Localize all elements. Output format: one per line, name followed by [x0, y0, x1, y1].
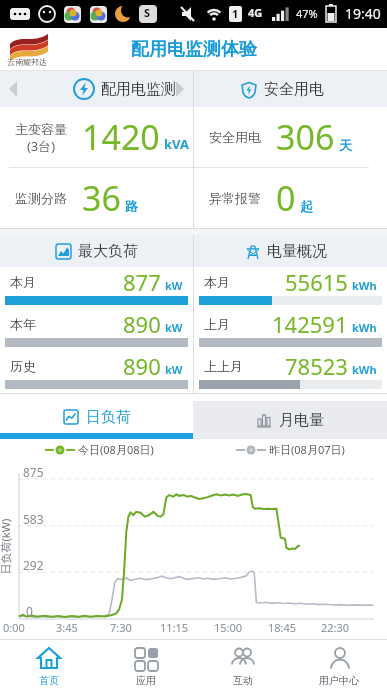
staticText: 用户中心	[319, 674, 359, 687]
staticText: 监测分路	[15, 190, 67, 206]
button[interactable]: 月电量	[193, 401, 387, 439]
staticText: 上上月	[204, 358, 243, 374]
staticText: kWh	[352, 320, 377, 335]
button[interactable]: 用户中心	[291, 640, 387, 688]
staticText: 日负荷	[86, 408, 131, 427]
staticText: 78523	[285, 351, 348, 380]
staticText: kWh	[352, 278, 377, 293]
staticText: 0	[26, 603, 33, 619]
staticText: 应用	[136, 674, 156, 687]
button[interactable]: 最大负荷	[0, 235, 193, 267]
staticText: 18:45	[268, 620, 297, 635]
button[interactable]: 日负荷	[0, 401, 193, 439]
staticText: 天	[339, 137, 352, 153]
staticText: 583	[23, 511, 44, 527]
staticText: 配用电监测	[101, 80, 176, 99]
staticText: 47%	[296, 6, 318, 21]
button[interactable]: 安全用电	[194, 71, 387, 107]
staticText: 路	[125, 198, 138, 214]
staticText: 历史	[10, 358, 36, 374]
staticText: 11:15	[160, 620, 189, 635]
staticText: 1420	[82, 114, 160, 160]
staticText: 起	[300, 198, 313, 214]
staticText: 36	[82, 175, 121, 221]
staticText: 875	[23, 464, 44, 480]
staticText: 292	[23, 557, 44, 573]
staticText: 142591	[272, 309, 348, 338]
staticText: 云南耀邦达	[7, 57, 47, 67]
staticText: 首页	[39, 674, 59, 687]
staticText: kW	[165, 320, 183, 335]
staticText: 890	[123, 351, 161, 380]
staticText: 异常报警	[209, 190, 261, 206]
staticText: 本月	[204, 274, 230, 290]
staticText: 安全用电	[209, 129, 261, 145]
staticText: 3:45	[56, 620, 78, 635]
staticText: 本月	[10, 274, 36, 290]
staticText: 22:30	[321, 620, 350, 635]
button[interactable]: 电量概况	[194, 235, 387, 267]
staticText: 主变容量 (3台)	[15, 121, 67, 154]
staticText: 19:40	[345, 4, 381, 23]
staticText: 安全用电	[264, 80, 324, 99]
staticText: 890	[123, 309, 161, 338]
staticText: 0	[276, 175, 296, 221]
button[interactable]: 应用	[97, 640, 194, 688]
button[interactable]: 首页	[0, 640, 97, 688]
staticText: 1	[232, 6, 239, 21]
staticText: 7:30	[110, 620, 132, 635]
staticText: 0:00	[3, 620, 25, 635]
staticText: 最大负荷	[78, 242, 138, 261]
staticText: 本年	[10, 316, 36, 332]
staticText: kVA	[164, 135, 189, 153]
staticText: 4G	[248, 5, 263, 20]
staticText: 电量概况	[267, 242, 327, 261]
staticText: kWh	[352, 362, 377, 377]
staticText: 15:00	[214, 620, 243, 635]
staticText: kW	[165, 362, 183, 377]
button[interactable]: 配用电监测	[0, 71, 193, 107]
staticText: 日负荷(kW)	[0, 518, 12, 574]
staticText: 月电量	[279, 411, 324, 430]
staticText: 877	[123, 267, 161, 296]
staticText: kW	[165, 278, 183, 293]
staticText: S	[144, 5, 151, 20]
staticText: 昨日(08月07日)	[269, 442, 345, 457]
staticText: 306	[276, 114, 335, 160]
staticText: 配用电监测体验	[131, 38, 257, 61]
staticText: 55615	[285, 267, 348, 296]
staticText: 互动	[233, 674, 253, 687]
button[interactable]: 互动	[194, 640, 291, 688]
staticText: 今日(08月08日)	[78, 442, 154, 457]
staticText: 上月	[204, 316, 230, 332]
